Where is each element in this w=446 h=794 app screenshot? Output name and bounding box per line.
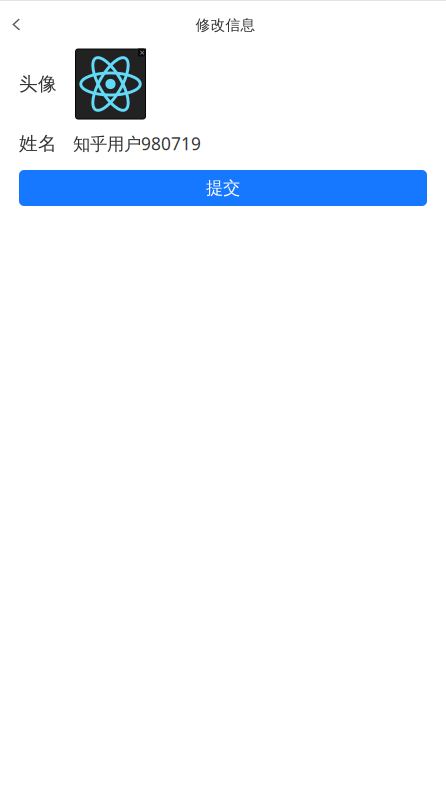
- button[interactable]: Change profile photo: [75, 48, 146, 119]
- staticText: 头像: [19, 72, 57, 95]
- button[interactable]: Back: [0, 1, 33, 49]
- staticText: 知乎用户980719: [73, 132, 201, 155]
- button[interactable]: 提交: [19, 170, 427, 206]
- staticText: 修改信息: [195, 16, 255, 34]
- staticText: 姓名: [19, 132, 57, 155]
- staticText: 提交: [206, 177, 240, 199]
